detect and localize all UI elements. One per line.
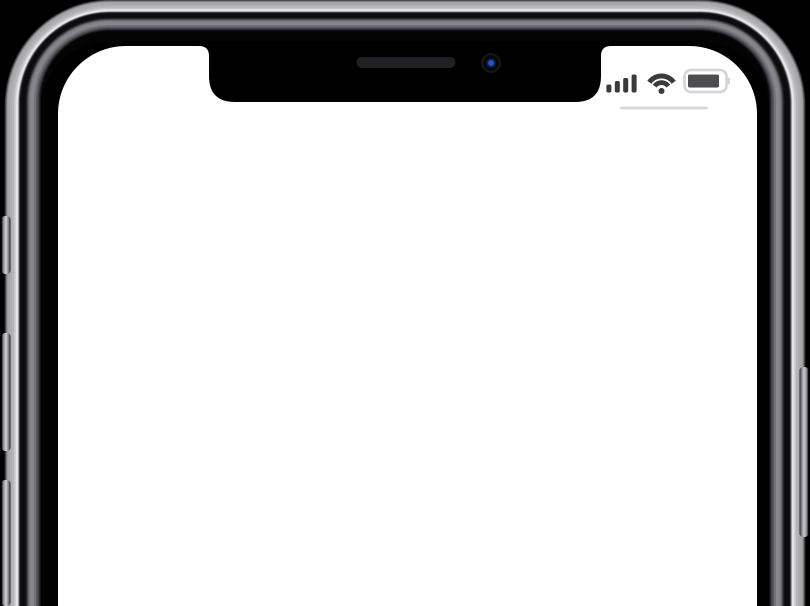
button[interactable]: Side button xyxy=(799,367,808,537)
button[interactable]: Volume up xyxy=(1,333,10,451)
button[interactable]: Ring/Silent switch xyxy=(1,216,10,274)
button[interactable]: Volume down xyxy=(1,480,10,606)
